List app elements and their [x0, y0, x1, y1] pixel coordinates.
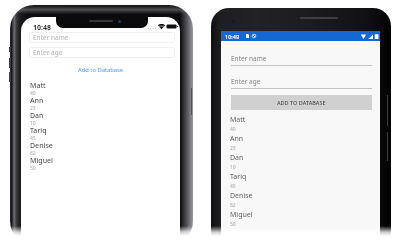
staticText: Denise — [230, 191, 253, 201]
button[interactable]: Tariq — [230, 172, 370, 191]
button[interactable]: Dan — [30, 111, 170, 126]
staticText: Dan — [230, 153, 244, 163]
button[interactable]: Enter age — [231, 77, 372, 89]
button[interactable]: Enter name — [231, 54, 372, 66]
staticText: 45 — [30, 135, 36, 141]
button[interactable]: Denise — [30, 141, 170, 156]
staticText: 10:49 — [225, 33, 240, 40]
staticText: Tariq — [230, 172, 247, 182]
staticText: 10:48 — [33, 23, 51, 33]
button[interactable]: Add to Database — [73, 65, 129, 74]
button[interactable]: Enter age — [29, 47, 175, 58]
staticText: Ann — [30, 96, 44, 105]
staticText: 50 — [230, 221, 236, 228]
staticText: Enter age — [231, 77, 261, 86]
button[interactable]: Matt — [230, 115, 370, 134]
staticText: Enter age — [33, 48, 63, 57]
staticText: Miguel — [30, 156, 53, 165]
button[interactable]: Miguel — [30, 156, 170, 172]
staticText: 40 — [230, 126, 236, 133]
button[interactable]: Enter name — [29, 32, 175, 43]
button[interactable]: Dan — [230, 153, 370, 172]
staticText: Ann — [230, 134, 244, 144]
staticText: 50 — [30, 165, 36, 172]
button[interactable]: Tariq — [30, 126, 170, 141]
staticText: 62 — [230, 202, 236, 209]
staticText: Add to Database — [78, 66, 124, 74]
staticText: Matt — [30, 81, 46, 90]
staticText: Enter name — [33, 33, 69, 42]
button[interactable]: ADD TO DATABASE — [231, 95, 372, 110]
button[interactable]: Miguel — [230, 210, 370, 229]
staticText: Tariq — [30, 126, 47, 135]
staticText: 45 — [230, 183, 236, 190]
staticText: Denise — [30, 141, 53, 150]
button[interactable]: Ann — [30, 96, 170, 111]
button[interactable]: Denise — [230, 191, 370, 210]
staticText: 62 — [30, 150, 36, 156]
button[interactable]: Matt — [30, 81, 170, 96]
staticText: 10 — [230, 164, 236, 171]
staticText: ADD TO DATABASE — [277, 99, 326, 106]
staticText: 40 — [30, 90, 36, 96]
staticText: Matt — [230, 115, 246, 125]
staticText: Enter name — [231, 54, 267, 63]
staticText: 10 — [30, 120, 36, 126]
staticText: Dan — [30, 111, 44, 120]
staticText: 23 — [30, 105, 36, 111]
button[interactable]: Ann — [230, 134, 370, 153]
staticText: 23 — [230, 145, 236, 152]
staticText: Miguel — [230, 210, 253, 220]
